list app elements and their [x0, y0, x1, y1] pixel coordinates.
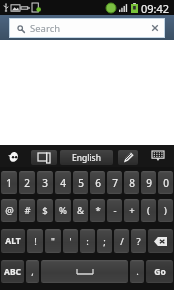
button[interactable]: * — [90, 199, 105, 222]
staticText: 6 — [95, 176, 101, 190]
staticText: $ — [42, 204, 48, 217]
staticText: : — [86, 235, 89, 248]
button[interactable]: Backspace — [148, 229, 173, 253]
button[interactable]: ; — [97, 229, 112, 253]
staticText: ALT — [5, 235, 21, 247]
button[interactable]: ABC — [1, 260, 24, 283]
button[interactable]: " — [45, 229, 61, 253]
button[interactable]: Hide keyboard — [152, 151, 164, 161]
button[interactable]: 8 — [124, 171, 139, 194]
button[interactable]: 5 — [73, 171, 88, 194]
staticText: - — [113, 204, 117, 217]
button[interactable]: % — [55, 199, 71, 222]
button[interactable]: 7 — [107, 171, 122, 194]
button[interactable]: 0 — [158, 171, 173, 194]
button[interactable]: Clear — [150, 23, 160, 33]
button[interactable]: 4 — [55, 171, 71, 194]
staticText: + — [129, 204, 135, 217]
button[interactable]: ' — [63, 229, 78, 253]
staticText: * — [95, 204, 101, 217]
button[interactable]: ) — [158, 199, 173, 222]
button[interactable]: @ — [1, 199, 17, 222]
staticText: ' — [69, 235, 72, 248]
button[interactable]: English — [60, 150, 113, 165]
button[interactable]: - — [107, 199, 122, 222]
staticText: & — [77, 204, 84, 217]
staticText: ABC — [4, 266, 21, 278]
staticText: . — [136, 265, 139, 278]
button[interactable]: 1 — [1, 171, 17, 194]
staticText: ! — [34, 235, 37, 248]
staticText: ; — [103, 235, 106, 248]
staticText: English — [72, 152, 101, 164]
button[interactable]: Handwriting — [118, 150, 138, 165]
button[interactable]: Space — [41, 260, 128, 283]
staticText: @ — [5, 204, 14, 217]
button[interactable]: , — [26, 260, 39, 283]
staticText: ) — [164, 204, 167, 217]
button[interactable]: . — [130, 260, 144, 283]
button[interactable]: Search — [9, 18, 165, 38]
button[interactable]: 3 — [37, 171, 53, 194]
staticText: 3 — [42, 176, 48, 190]
button[interactable]: + — [124, 199, 139, 222]
staticText: # — [24, 204, 31, 217]
staticText: 1 — [6, 176, 12, 190]
button[interactable]: 6 — [90, 171, 105, 194]
staticText: % — [59, 204, 67, 217]
button[interactable]: ( — [141, 199, 156, 222]
button[interactable]: ? — [131, 229, 146, 253]
button[interactable]: # — [19, 199, 35, 222]
button[interactable]: Voice input — [8, 151, 19, 162]
button[interactable]: 9 — [141, 171, 156, 194]
staticText: 09:42 — [141, 1, 170, 16]
button[interactable]: ! — [27, 229, 43, 253]
button[interactable]: Keyboard layout — [31, 150, 57, 165]
button[interactable]: & — [73, 199, 88, 222]
button[interactable]: ALT — [1, 229, 25, 253]
staticText: 5 — [78, 176, 84, 190]
staticText: 7 — [112, 176, 118, 190]
button[interactable]: Go — [146, 260, 173, 283]
button[interactable]: $ — [37, 199, 53, 222]
staticText: ? — [136, 235, 141, 248]
staticText: 4 — [60, 176, 66, 190]
staticText: " — [51, 235, 55, 248]
staticText: 2 — [24, 176, 30, 190]
staticText: 0 — [163, 176, 169, 190]
staticText: 9 — [146, 176, 152, 190]
staticText: ( — [147, 204, 150, 217]
button[interactable]: : — [80, 229, 95, 253]
staticText: Go — [154, 266, 166, 278]
button[interactable]: / — [114, 229, 129, 253]
staticText: 8 — [129, 176, 135, 190]
staticText: / — [120, 235, 124, 248]
staticText: Search — [30, 22, 61, 35]
staticText: , — [31, 265, 34, 278]
button[interactable]: 2 — [19, 171, 35, 194]
